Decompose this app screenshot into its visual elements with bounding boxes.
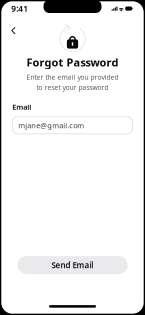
staticText: Forgot Password — [26, 55, 118, 70]
staticText: Send Email — [51, 260, 93, 271]
button[interactable]: Back — [1, 24, 23, 37]
button[interactable]: mjane@gmail.com — [12, 117, 133, 134]
staticText: mjane@gmail.com — [18, 120, 84, 130]
staticText: Enter the email you provided — [26, 73, 118, 82]
button[interactable]: Send Email — [17, 256, 128, 274]
staticText: 9:41 — [11, 3, 28, 14]
staticText: Email — [12, 102, 31, 112]
staticText: to reset your password — [36, 83, 108, 92]
